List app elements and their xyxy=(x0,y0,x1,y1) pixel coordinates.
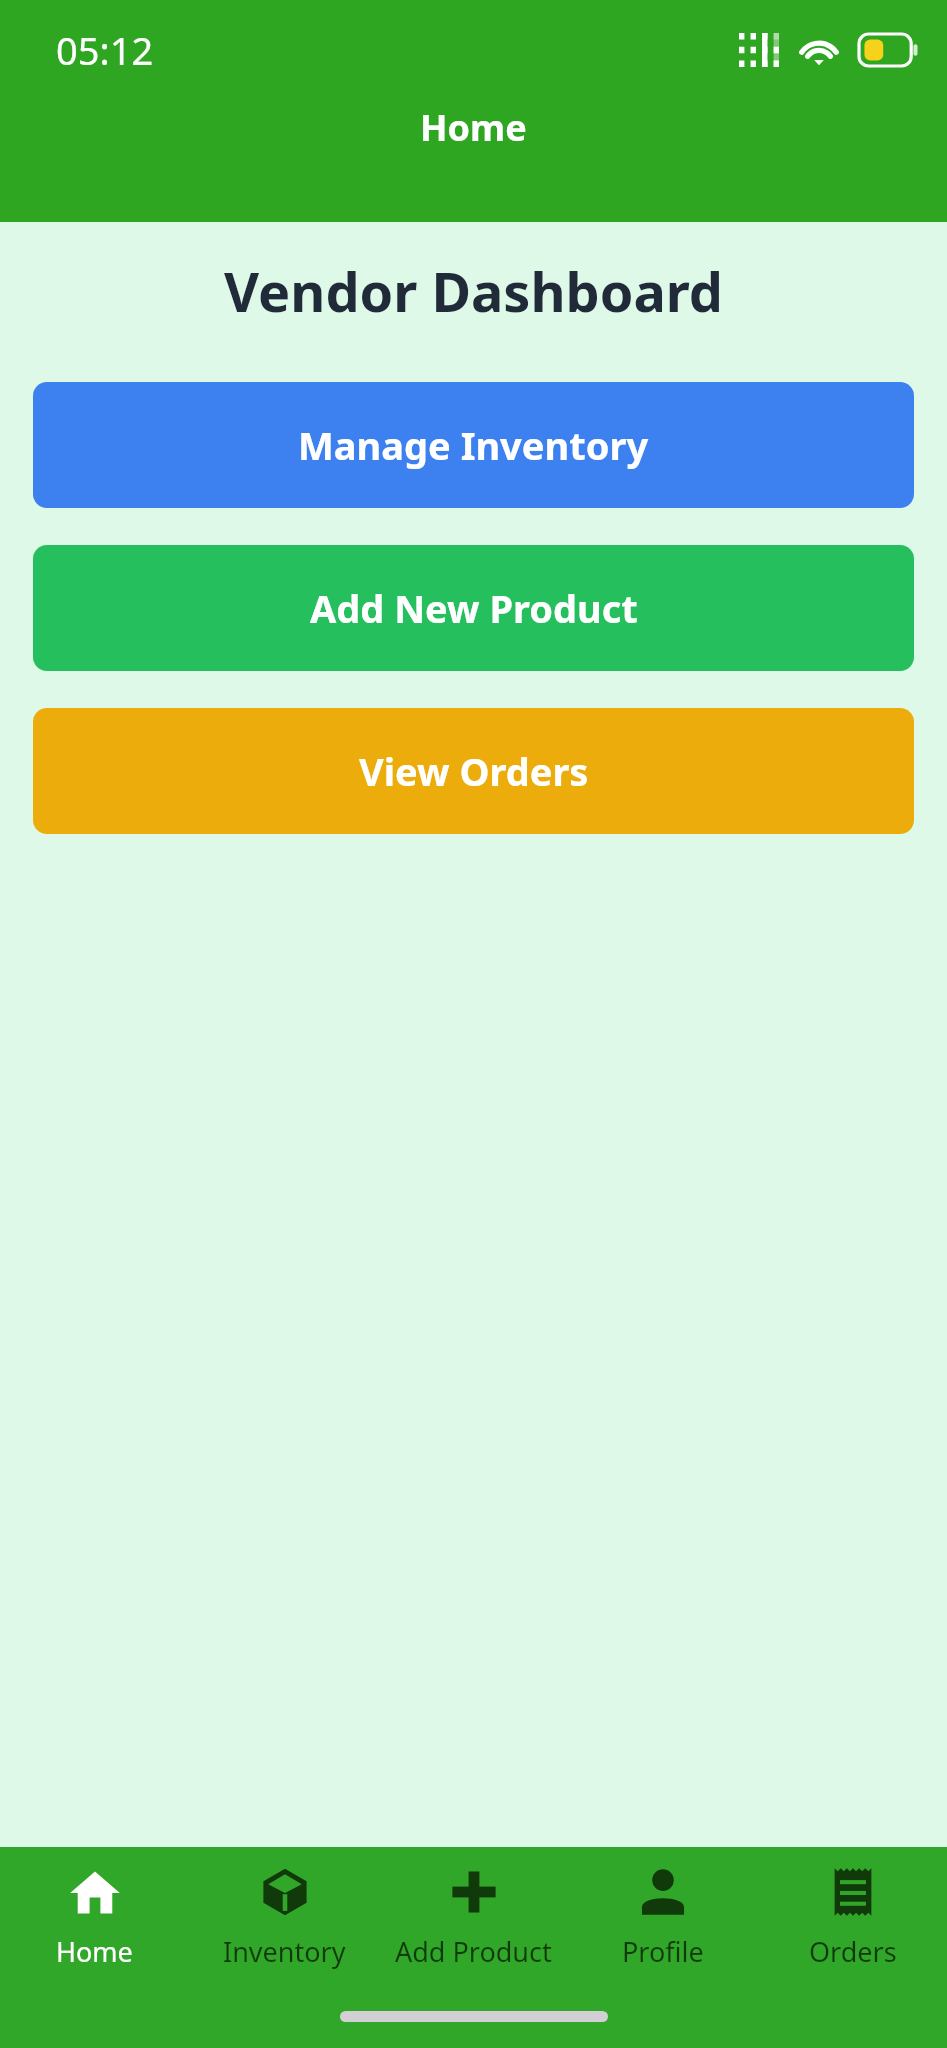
staticText: Manage Inventory xyxy=(298,419,649,471)
staticText: Inventory xyxy=(223,1933,346,1970)
staticText: View Orders xyxy=(359,745,589,797)
staticText: Profile xyxy=(622,1933,704,1970)
button[interactable]: Home xyxy=(0,1847,189,1987)
staticText: Home xyxy=(420,103,527,152)
staticText: Home xyxy=(56,1933,133,1970)
button[interactable]: Add New Product xyxy=(33,545,914,671)
button[interactable]: Add Product xyxy=(379,1847,568,1987)
button[interactable]: Orders xyxy=(758,1847,947,1987)
staticText: Orders xyxy=(809,1933,897,1970)
staticText: 05:12 xyxy=(56,24,154,76)
button[interactable]: Inventory xyxy=(190,1847,379,1987)
button[interactable]: Profile xyxy=(568,1847,757,1987)
button[interactable]: Manage Inventory xyxy=(33,382,914,508)
staticText: Add New Product xyxy=(310,582,638,634)
button[interactable]: View Orders xyxy=(33,708,914,834)
staticText: Vendor Dashboard xyxy=(0,254,947,328)
staticText: Add Product xyxy=(395,1933,552,1970)
